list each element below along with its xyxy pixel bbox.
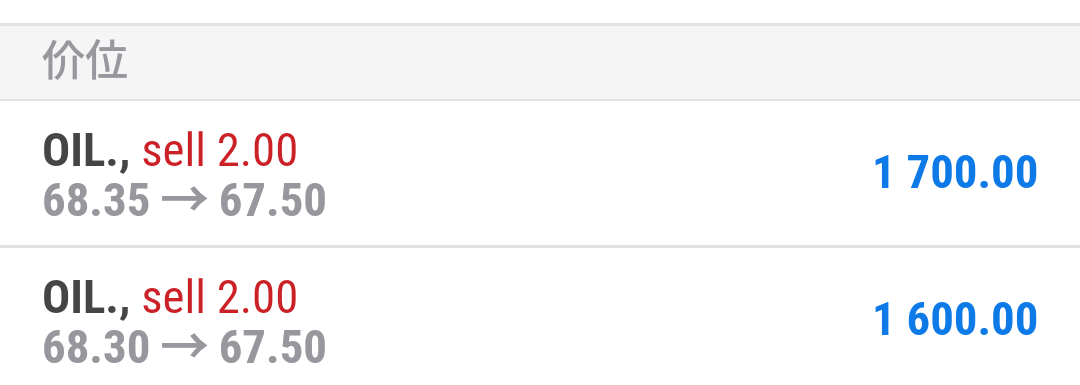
staticText: 68.30 → 67.50 [42, 323, 328, 373]
button[interactable]: 价位 section header [0, 26, 1080, 99]
button[interactable]: OIL., sell 2.00 [0, 101, 1080, 245]
staticText: OIL., sell 2.00 [42, 126, 299, 176]
staticText: 68.35 → 67.50 [42, 176, 328, 226]
button[interactable]: OIL., sell 2.00 [0, 248, 1080, 385]
staticText: 1 700.00 [872, 148, 1039, 198]
staticText: 价位 [42, 26, 128, 87]
staticText: 1 600.00 [872, 295, 1039, 345]
staticText: OIL., sell 2.00 [42, 273, 299, 323]
